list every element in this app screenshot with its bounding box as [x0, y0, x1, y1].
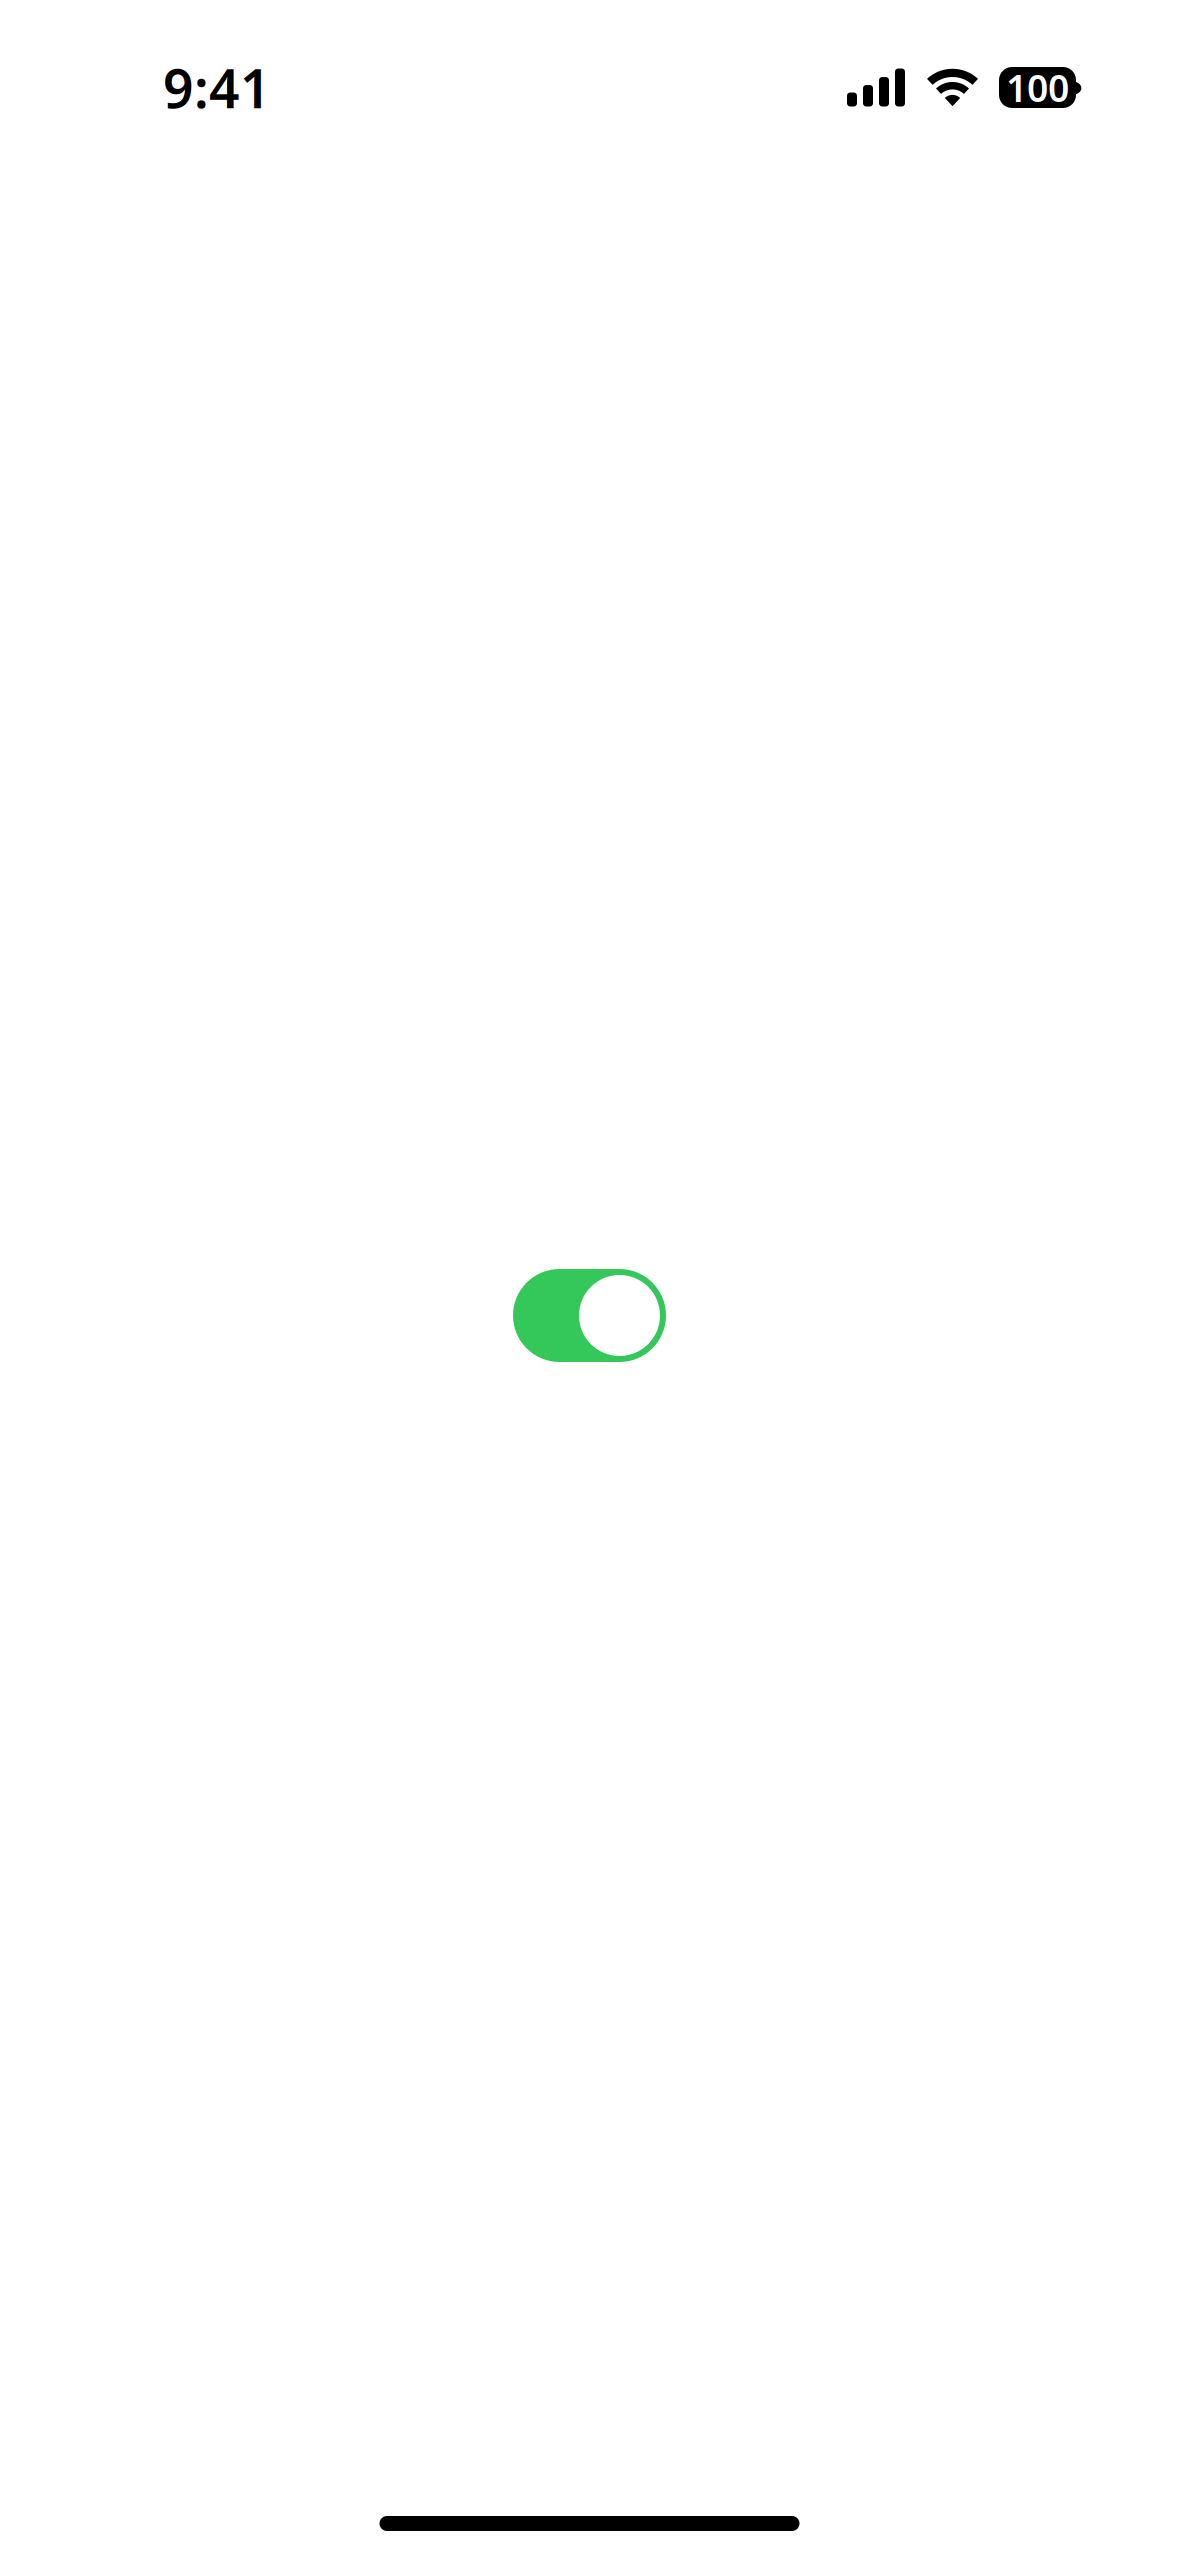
- staticText: 100: [1006, 63, 1069, 112]
- staticText: 9:41: [163, 52, 271, 123]
- button[interactable]: 1: [513, 1269, 666, 1362]
